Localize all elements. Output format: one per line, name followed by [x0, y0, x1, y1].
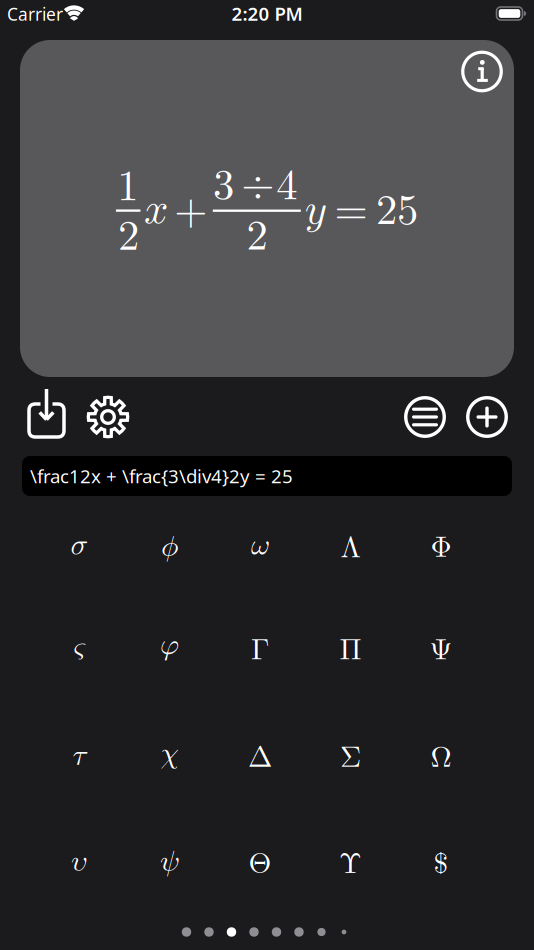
staticText: = — [335, 190, 368, 232]
button[interactable]: Settings — [86, 395, 130, 439]
button[interactable]: Save — [26, 388, 66, 440]
button[interactable]: Λ — [306, 502, 394, 594]
staticText: 𝜍 — [73, 633, 84, 662]
button[interactable]: 𝜓 — [125, 816, 213, 908]
button[interactable]: $ — [397, 815, 485, 907]
staticText: 2 — [118, 215, 139, 258]
staticText: 𝜒 — [160, 739, 178, 768]
staticText: Λ — [340, 533, 360, 563]
staticText: Ω — [430, 743, 451, 772]
staticText: 2 — [246, 215, 267, 258]
button[interactable]: Γ — [216, 604, 304, 696]
staticText: 𝜐 — [71, 847, 87, 876]
staticText: Υ — [339, 849, 362, 878]
staticText: 25 — [376, 190, 418, 232]
button[interactable]: New equation — [466, 396, 508, 438]
button[interactable]: Φ — [397, 502, 485, 594]
staticText: $ — [433, 840, 448, 882]
staticText: + — [174, 190, 207, 233]
button[interactable]: 𝜑 — [125, 599, 213, 691]
staticText: 𝜎 — [70, 531, 87, 560]
staticText: 2:20 PM — [231, 1, 302, 26]
staticText: 𝜙 — [161, 532, 178, 562]
button[interactable]: 𝜔 — [216, 499, 304, 591]
button[interactable]: Σ — [306, 712, 394, 804]
button[interactable]: 𝜒 — [125, 708, 213, 800]
button[interactable]: Υ — [306, 818, 394, 910]
button[interactable]: LaTeX input — [22, 456, 512, 496]
staticText: Carrier — [7, 2, 63, 25]
button[interactable]: Π — [306, 604, 394, 696]
staticText: Σ — [340, 743, 361, 772]
staticText: 𝜏 — [72, 741, 85, 771]
staticText: 𝑥 — [144, 188, 168, 231]
button[interactable]: Ω — [397, 712, 485, 804]
button[interactable]: Equation list — [404, 396, 446, 438]
staticText: ÷ — [241, 164, 274, 207]
staticText: 3 — [213, 164, 234, 207]
staticText: \frac12x + \frac{3\div4}2y = 25 — [30, 464, 293, 488]
button[interactable]: 𝜎 — [35, 499, 123, 591]
staticText: 4 — [276, 165, 297, 208]
staticText: Φ — [430, 533, 451, 562]
button[interactable]: 𝜍 — [35, 602, 123, 694]
button[interactable]: Info — [461, 50, 503, 92]
staticText: 𝜔 — [251, 531, 269, 560]
staticText: 𝑦 — [305, 189, 326, 231]
button[interactable]: 𝜐 — [35, 816, 123, 908]
staticText: Π — [339, 635, 361, 665]
button[interactable]: Keyboard page — [0, 0, 534, 950]
staticText: 𝜓 — [160, 847, 179, 876]
staticText: 𝜑 — [160, 631, 179, 660]
button[interactable]: Ψ — [397, 604, 485, 696]
staticText: Γ — [251, 635, 269, 665]
button[interactable]: Δ — [216, 712, 304, 804]
staticText: Θ — [248, 849, 271, 878]
staticText: Δ — [248, 743, 272, 772]
staticText: Ψ — [429, 635, 452, 665]
staticText: 1 — [117, 166, 138, 209]
button[interactable]: Θ — [216, 818, 304, 910]
button[interactable]: 𝜏 — [35, 710, 123, 802]
button[interactable]: 𝜙 — [125, 501, 213, 593]
